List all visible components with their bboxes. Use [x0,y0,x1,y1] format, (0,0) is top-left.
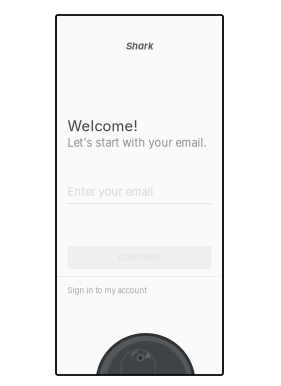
staticText: CONTINUE [118,253,160,262]
staticText: Let's start with your email. [67,136,206,149]
button[interactable]: Sign in to my account [67,285,211,296]
staticText: Enter your email [67,185,153,198]
staticText: Shark [126,40,153,52]
staticText: Sign in to my account [67,286,147,295]
staticText: Welcome! [67,117,137,135]
